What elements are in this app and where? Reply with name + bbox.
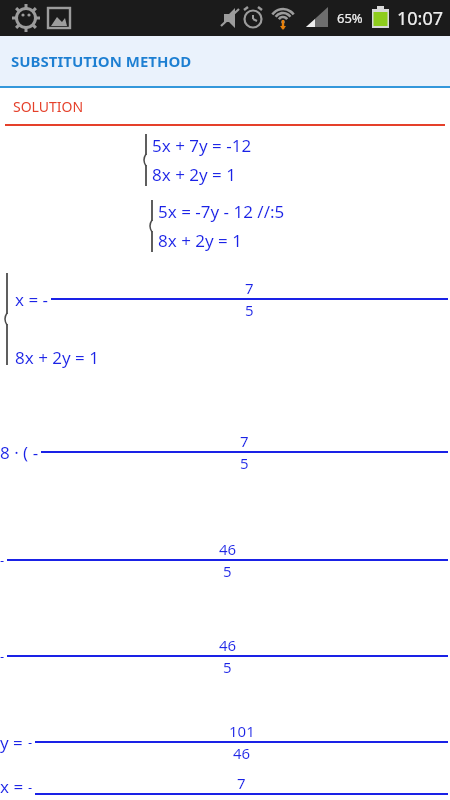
staticText: 46 (233, 743, 251, 763)
staticText: y = (0, 731, 28, 754)
button[interactable]: Substitution method (0, 36, 450, 86)
staticText: - (0, 647, 5, 665)
staticText: 7 (245, 278, 254, 298)
staticText: 7 (237, 773, 246, 793)
staticText: x = - (15, 288, 49, 311)
staticText: 5x = -7y - 12 //:5 (158, 200, 285, 223)
staticText: 46 (219, 635, 237, 655)
staticText: 65% (337, 9, 363, 27)
staticText: 8x + 2y = 1 (152, 163, 236, 186)
staticText: SUBSTITUTION METHOD (11, 51, 192, 71)
staticText: 8x + 2y = 1 (158, 229, 242, 252)
staticText: 8x + 2y = 1 (15, 346, 99, 369)
staticText: 46 (219, 539, 237, 559)
staticText: - (28, 778, 33, 796)
staticText: 8 · ( - (0, 441, 39, 464)
staticText: 7 (240, 431, 249, 451)
staticText: 5 (223, 561, 232, 581)
staticText: 5x + 7y = -12 (152, 134, 252, 157)
staticText: - (0, 551, 5, 569)
staticText: 101 (229, 721, 255, 741)
staticText: - (28, 733, 33, 751)
staticText: 5 (223, 657, 232, 677)
staticText: 5 (240, 453, 249, 473)
staticText: 10:07 (397, 6, 444, 31)
staticText: SOLUTION (13, 97, 84, 116)
staticText: 5 (245, 300, 254, 320)
staticText: x = (0, 775, 28, 798)
